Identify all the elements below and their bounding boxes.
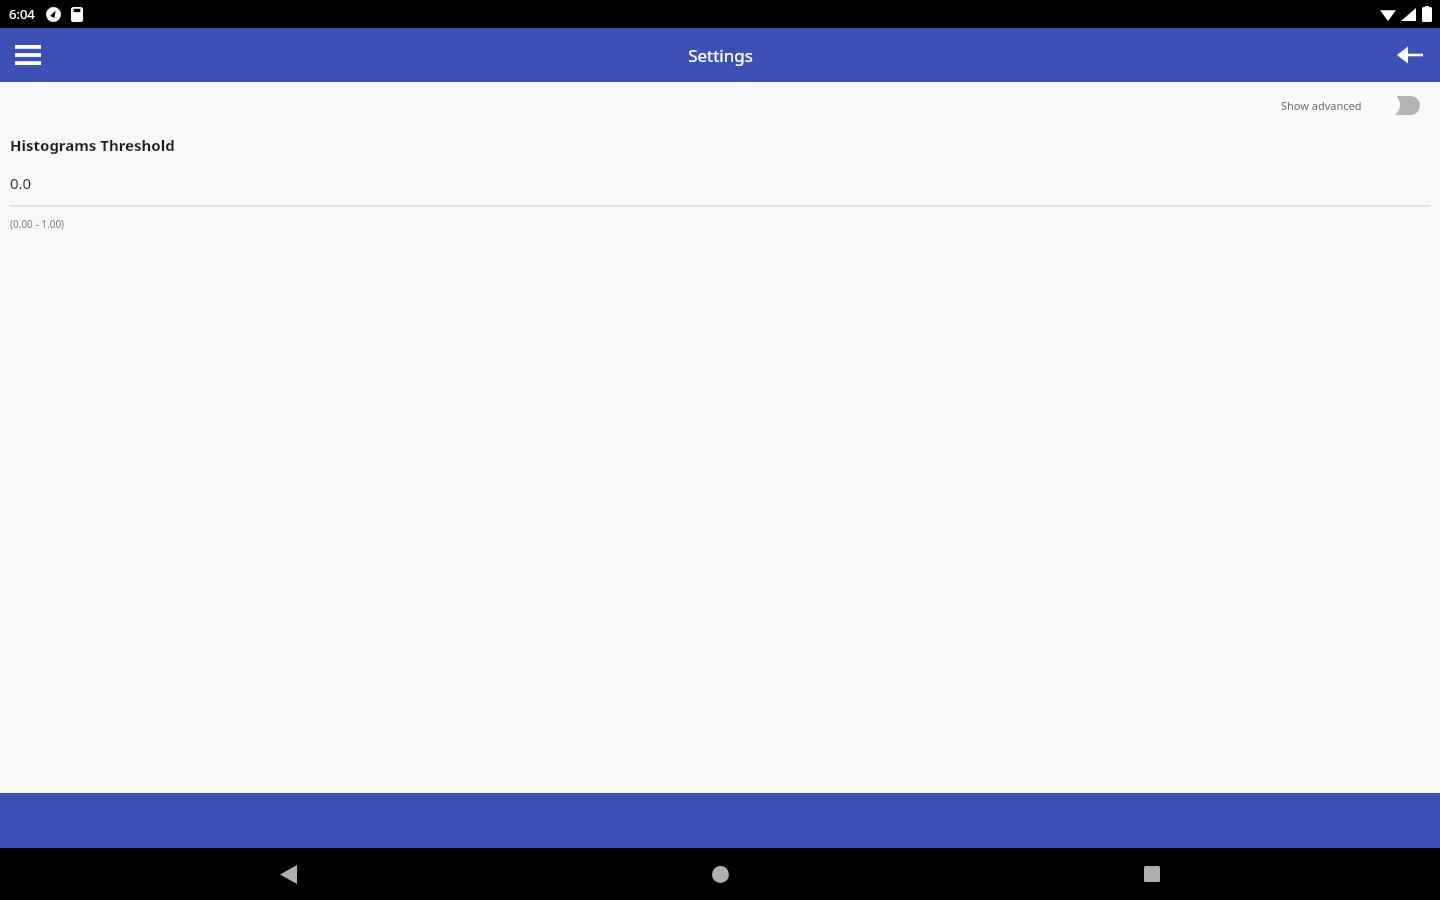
staticText: (0.00 - 1.00) [10, 217, 65, 231]
button[interactable]: Open navigation menu [4, 31, 52, 79]
button[interactable]: Recent apps [1126, 848, 1178, 900]
staticText: 0.0 [10, 173, 32, 193]
button[interactable]: 0.0 [10, 173, 1430, 193]
button[interactable]: Back [262, 848, 314, 900]
staticText: Histograms Threshold [10, 135, 175, 155]
staticText: 6:04 [9, 5, 35, 23]
button[interactable]: Back [1386, 31, 1434, 79]
button[interactable]: Show advanced [1277, 89, 1428, 121]
staticText: Show advanced [1281, 98, 1362, 113]
button[interactable]: Home [694, 848, 746, 900]
staticText: Settings [688, 44, 753, 67]
